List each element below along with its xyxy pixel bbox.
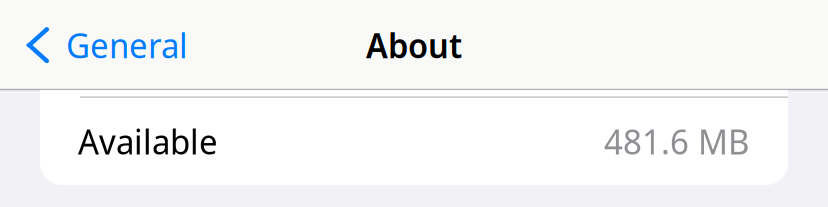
button[interactable]: Available [40, 98, 788, 185]
button[interactable]: Back to General [0, 0, 198, 90]
staticText: Available [78, 118, 218, 164]
staticText: 481.6 MB [604, 118, 749, 164]
staticText: General [66, 22, 188, 68]
staticText: About [366, 22, 462, 68]
